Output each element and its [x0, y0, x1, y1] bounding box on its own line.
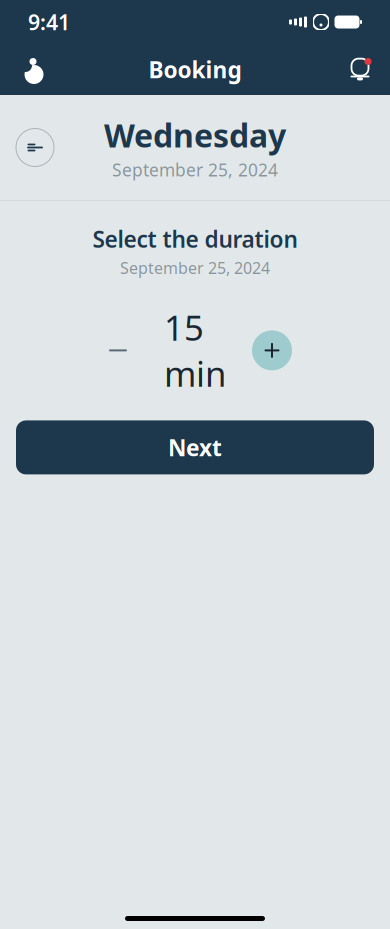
staticText: 15 min — [164, 304, 226, 396]
staticText: 9:41 — [28, 8, 70, 36]
button[interactable]: Next — [16, 420, 374, 474]
button[interactable]: Increase duration — [250, 328, 294, 372]
staticText: September 25, 2024 — [120, 257, 270, 278]
staticText: Wednesday — [104, 114, 286, 156]
staticText: Booking — [148, 54, 241, 84]
staticText: September 25, 2024 — [112, 158, 278, 181]
staticText: Next — [168, 432, 222, 462]
button[interactable]: Notifications — [338, 47, 382, 91]
button[interactable]: Back — [13, 125, 57, 169]
button[interactable]: Decrease duration — [96, 328, 140, 372]
button[interactable]: Home — [8, 47, 52, 91]
staticText: Select the duration — [92, 224, 297, 254]
